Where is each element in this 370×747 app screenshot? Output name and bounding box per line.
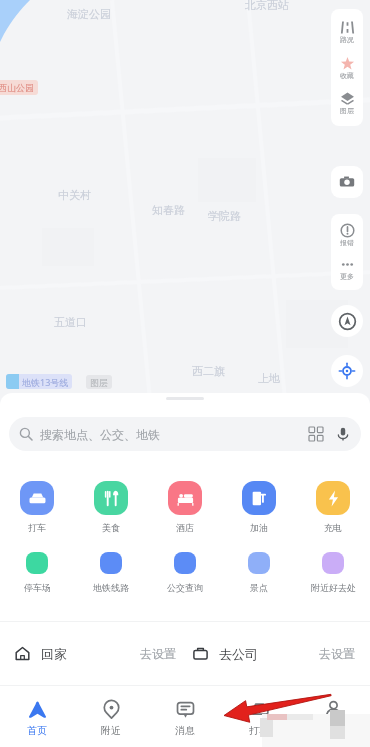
button[interactable]: 加油 [229,481,289,533]
button[interactable]: 附近好去处 [300,552,366,593]
staticText: 打车 [28,522,46,533]
button[interactable]: Street view [331,166,363,198]
staticText: 中关村 [58,188,91,202]
staticText: 地铁线路 [93,582,129,593]
staticText: 我的 [323,724,343,737]
staticText: 附近好去处 [311,582,356,593]
staticText: 加油 [250,522,268,533]
staticText: 去设置 [319,646,355,661]
button[interactable]: 更多 [331,257,363,281]
staticText: 消息 [175,724,195,737]
staticText: 学院路 [208,209,241,223]
button[interactable]: 回家 [0,622,185,685]
staticText: 附近 [101,724,121,737]
staticText: 图层 [90,377,108,388]
button[interactable]: 收藏 [331,56,363,80]
button[interactable]: 路况 [331,20,363,44]
button[interactable]: 景点 [226,552,292,593]
button[interactable]: 酒店 [155,481,215,533]
button[interactable]: 美食 [81,481,141,533]
staticText: 海淀公园 [67,7,111,21]
staticText: 路况 [340,35,354,44]
button[interactable]: 打车 [7,481,67,533]
button[interactable]: My location [331,355,363,387]
button[interactable]: 搜索地点、公交、地铁 [9,417,361,451]
staticText: 地铁13号线 [22,376,69,388]
staticText: 上地 [258,371,280,385]
button[interactable]: 消息 [148,686,222,747]
button[interactable]: 附近 [74,686,148,747]
staticText: 酒店 [176,522,194,533]
staticText: 收藏 [340,71,354,80]
staticText: 报错 [340,238,354,247]
button[interactable]: Compass [331,305,363,337]
button[interactable]: 公交查询 [152,552,218,593]
staticText: 回家 [41,646,67,662]
button[interactable]: 地铁线路 [78,552,144,593]
staticText: 公交查询 [167,582,203,593]
staticText: 首页 [27,724,47,737]
button[interactable]: 打车 [222,686,296,747]
staticText: 五道口 [54,315,87,329]
staticText: 知春路 [152,203,185,217]
staticText: 西二旗 [192,364,225,378]
button[interactable]: 停车场 [4,552,70,593]
button[interactable]: 图层 [331,91,363,115]
staticText: 北京西站 [245,0,289,12]
staticText: 去公司 [219,646,258,662]
staticText: 更多 [340,272,354,281]
staticText: 美食 [102,522,120,533]
staticText: 景点 [250,582,268,593]
button[interactable]: 报错 [331,223,363,247]
staticText: 搜索地点、公交、地铁 [40,427,160,442]
button[interactable]: 首页 [0,686,74,747]
staticText: 充电 [324,522,342,533]
staticText: 停车场 [24,582,51,593]
staticText: 打车 [249,724,269,737]
button[interactable]: 去公司 [185,622,370,685]
staticText: 西山公园 [0,82,34,93]
staticText: 图层 [340,106,354,115]
button[interactable]: 充电 [303,481,363,533]
staticText: 去设置 [140,646,176,661]
button[interactable]: 我的 [296,686,370,747]
